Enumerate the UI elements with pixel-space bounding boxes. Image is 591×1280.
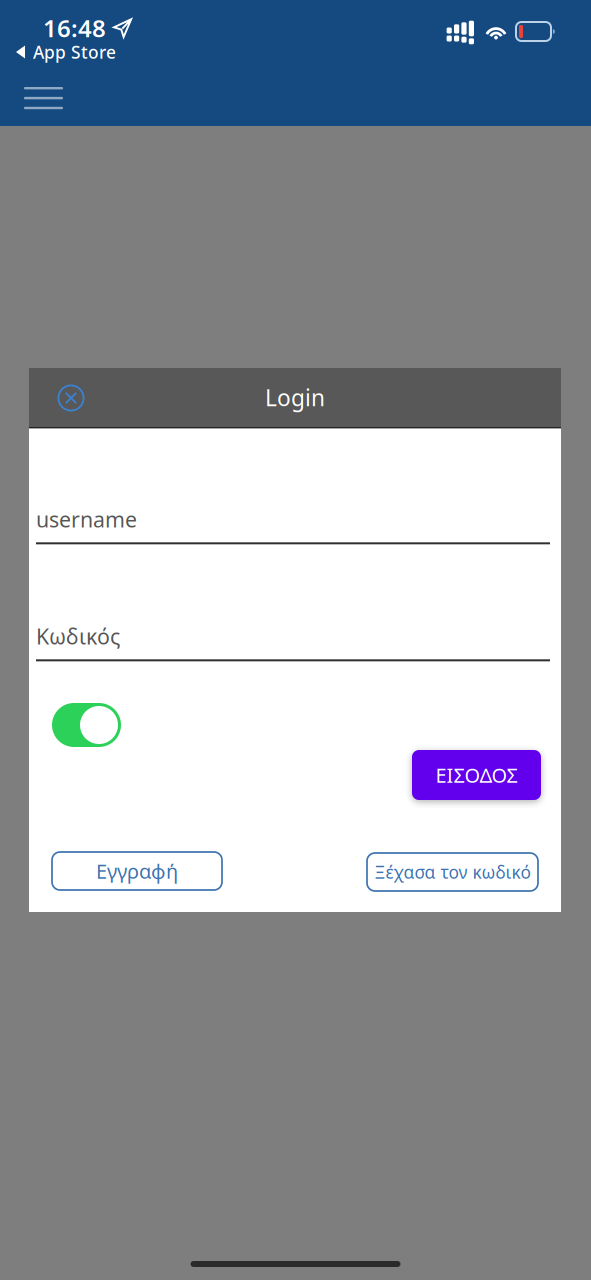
- staticText: 16:48: [43, 12, 106, 44]
- staticText: Κωδικός: [36, 622, 120, 650]
- button[interactable]: ΕΙΣΟΔΟΣ: [412, 750, 541, 800]
- button[interactable]: Εγγραφή: [52, 852, 222, 890]
- staticText: Εγγραφή: [96, 858, 178, 884]
- staticText: Login: [265, 382, 325, 412]
- button[interactable]: Menu: [17, 78, 70, 118]
- button[interactable]: Ξέχασα τον κωδικό: [367, 853, 538, 891]
- staticText: username: [36, 505, 137, 533]
- staticText: ΕΙΣΟΔΟΣ: [435, 762, 517, 788]
- button[interactable]: Remember me: [52, 703, 121, 747]
- staticText: App Store: [33, 40, 116, 63]
- button[interactable]: Close: [45, 372, 97, 424]
- staticText: Ξέχασα τον κωδικό: [374, 860, 530, 883]
